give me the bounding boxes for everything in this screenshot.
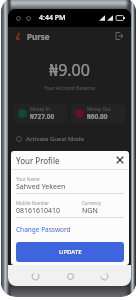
- staticText: ₦9.00: [49, 59, 90, 81]
- staticText: Change Password: [16, 225, 71, 234]
- staticText: ₦727.00: [30, 112, 55, 121]
- staticText: Purse: [27, 31, 50, 42]
- staticText: Your Name: [16, 176, 40, 182]
- button[interactable]: Activate Guest Mode: [16, 135, 131, 143]
- staticText: Sahved Yekeen: [16, 182, 66, 192]
- staticText: 4:44 PM: [39, 13, 66, 23]
- button[interactable]: UPDATE: [16, 242, 124, 262]
- button[interactable]: Recents: [96, 268, 112, 284]
- staticText: Money Out: [87, 106, 111, 112]
- staticText: Your Profile: [16, 155, 60, 166]
- staticText: Activate Guest Mode: [26, 135, 85, 143]
- button[interactable]: Home: [62, 268, 78, 284]
- button[interactable]: Money Out: [71, 104, 125, 123]
- button[interactable]: Change Password: [16, 225, 71, 234]
- button[interactable]: Money In: [14, 104, 67, 123]
- button[interactable]: Log out: [113, 30, 125, 42]
- button[interactable]: Back: [27, 268, 43, 284]
- staticText: 08161610410: [16, 206, 61, 216]
- button[interactable]: Close: [115, 155, 125, 165]
- staticText: Your Account Balance: [44, 85, 95, 92]
- staticText: Money In: [30, 106, 50, 112]
- staticText: Mobile Number: [16, 200, 50, 206]
- staticText: UPDATE: [59, 248, 82, 256]
- staticText: ₦60.00: [87, 112, 108, 121]
- staticText: NGN: [82, 206, 98, 216]
- staticText: Currency: [82, 200, 102, 206]
